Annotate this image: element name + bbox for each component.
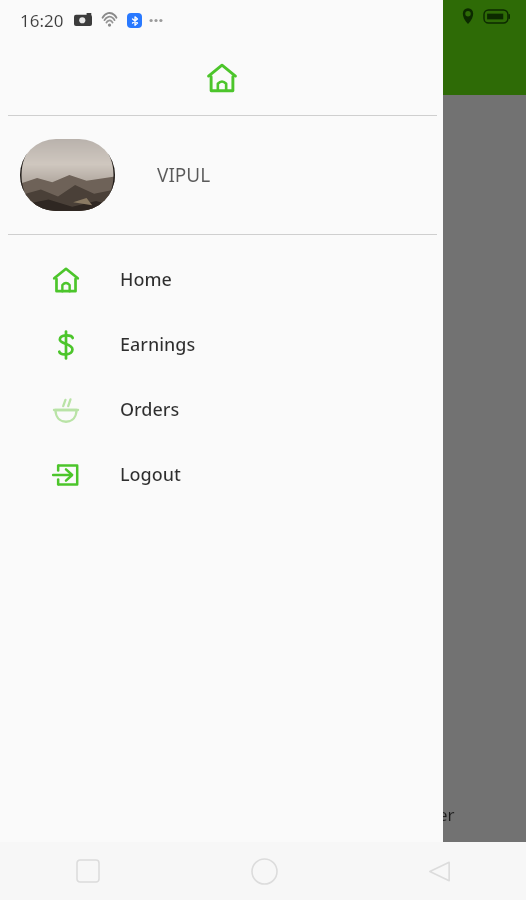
button[interactable]: VIPUL (0, 116, 443, 234)
button[interactable]: Back (415, 847, 463, 895)
button[interactable]: Home (0, 247, 443, 312)
staticText: Home (120, 267, 172, 292)
staticText: Logout (120, 462, 181, 487)
button[interactable]: Orders (0, 377, 443, 442)
staticText: Earnings (120, 332, 196, 357)
staticText: er (438, 803, 455, 826)
button[interactable]: Recent apps (64, 847, 112, 895)
staticText: Orders (120, 397, 180, 422)
staticText: 16:20 (20, 9, 64, 32)
button[interactable]: Home (240, 847, 288, 895)
staticText: VIPUL (157, 162, 211, 188)
button[interactable]: Earnings (0, 312, 443, 377)
button[interactable]: Logout (0, 442, 443, 507)
